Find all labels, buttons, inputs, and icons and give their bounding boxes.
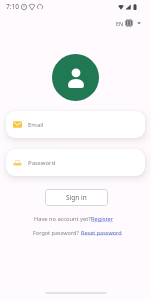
- staticText: Password: [28, 159, 56, 167]
- button[interactable]: Password: [6, 149, 145, 176]
- button[interactable]: Sign in: [45, 189, 108, 206]
- staticText: Have no account yet?: [34, 215, 91, 223]
- staticText: Email: [28, 121, 44, 129]
- staticText: EN: [116, 20, 124, 27]
- button[interactable]: EN: [114, 17, 143, 29]
- staticText: 7:10: [6, 2, 19, 11]
- button[interactable]: Reset password: [81, 229, 122, 236]
- button[interactable]: Register: [91, 215, 114, 223]
- button[interactable]: Email: [6, 111, 145, 138]
- staticText: Sign in: [66, 193, 87, 202]
- staticText: Forgot password?: [33, 229, 79, 236]
